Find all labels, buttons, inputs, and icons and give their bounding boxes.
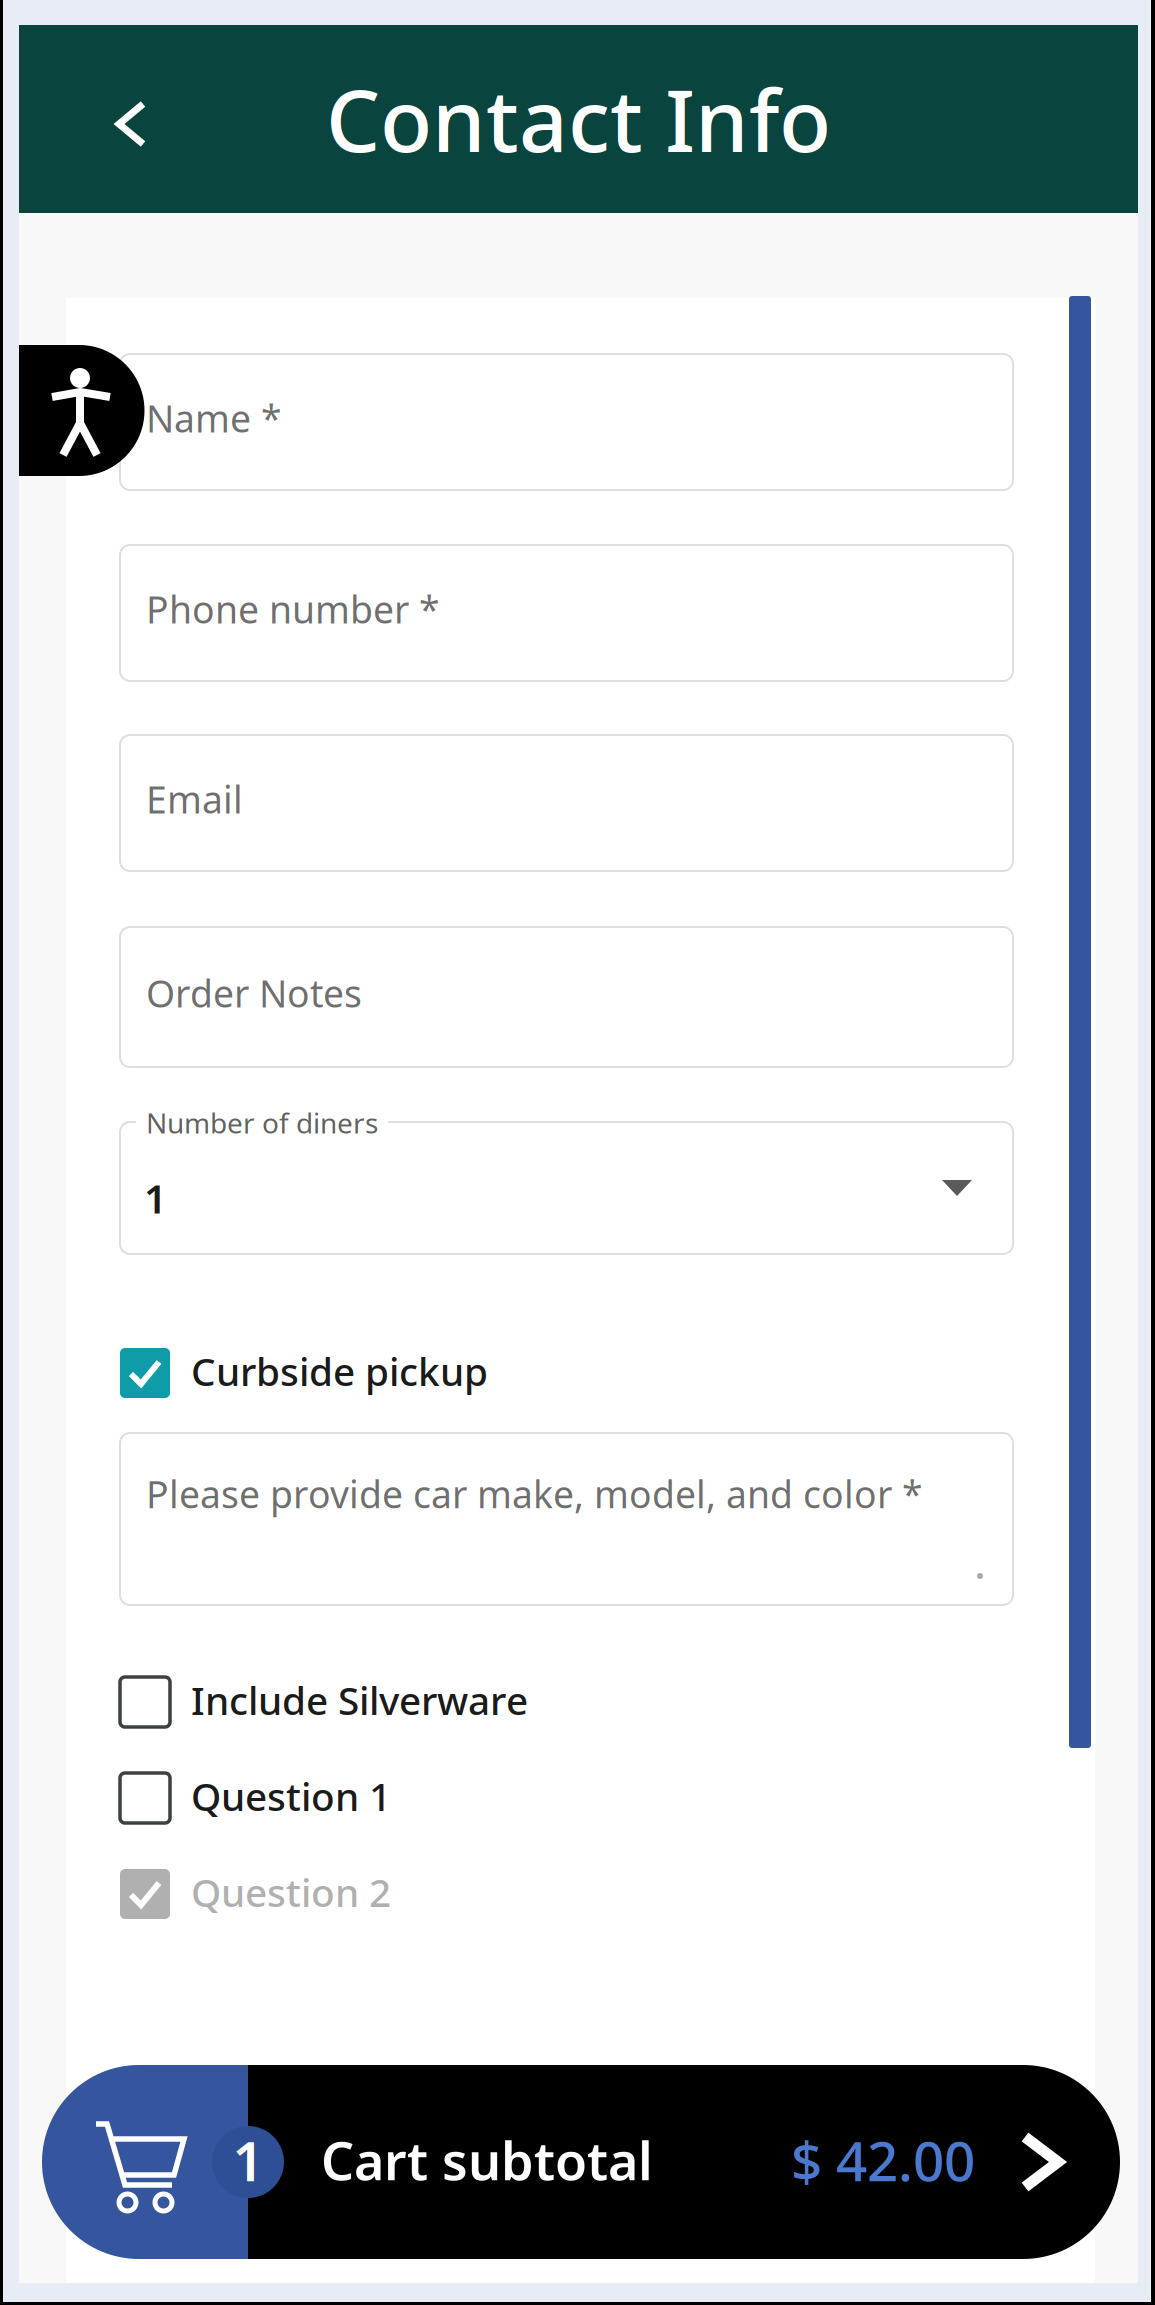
staticText: Name * bbox=[146, 393, 282, 443]
staticText: Order Notes bbox=[146, 968, 362, 1018]
staticText: 1 bbox=[144, 1171, 167, 1224]
button[interactable]: Back bbox=[89, 69, 173, 169]
staticText: 1 bbox=[232, 2124, 263, 2196]
button[interactable]: Accessibility options bbox=[19, 345, 145, 476]
staticText: Number of diners bbox=[146, 1104, 378, 1141]
button[interactable]: Phone number * bbox=[120, 545, 1013, 681]
staticText: Phone number * bbox=[146, 584, 440, 634]
button[interactable]: Number of diners bbox=[120, 1122, 1013, 1254]
staticText: Contact Info bbox=[326, 62, 831, 176]
button[interactable]: Name * bbox=[120, 354, 1013, 490]
staticText: Curbside pickup bbox=[191, 1345, 488, 1397]
staticText: Include Silverware bbox=[191, 1674, 528, 1726]
staticText: Cart subtotal bbox=[321, 2125, 653, 2195]
button[interactable]: Question 1 bbox=[120, 1750, 1013, 1846]
staticText: $ 42.00 bbox=[791, 2124, 975, 2196]
button[interactable]: Cart subtotal bbox=[19, 2065, 1137, 2259]
staticText: Question 1 bbox=[191, 1770, 391, 1822]
button[interactable]: Email bbox=[120, 735, 1013, 871]
staticText: Please provide car make, model, and colo… bbox=[146, 1469, 923, 1519]
button[interactable]: Curbside pickup bbox=[120, 1325, 1013, 1421]
button[interactable]: Order Notes bbox=[120, 927, 1013, 1067]
button[interactable]: Include Silverware bbox=[120, 1654, 1013, 1750]
staticText: Email bbox=[146, 774, 243, 824]
staticText: Question 2 bbox=[191, 1866, 391, 1918]
button[interactable]: Question 2 bbox=[120, 1846, 1013, 1942]
